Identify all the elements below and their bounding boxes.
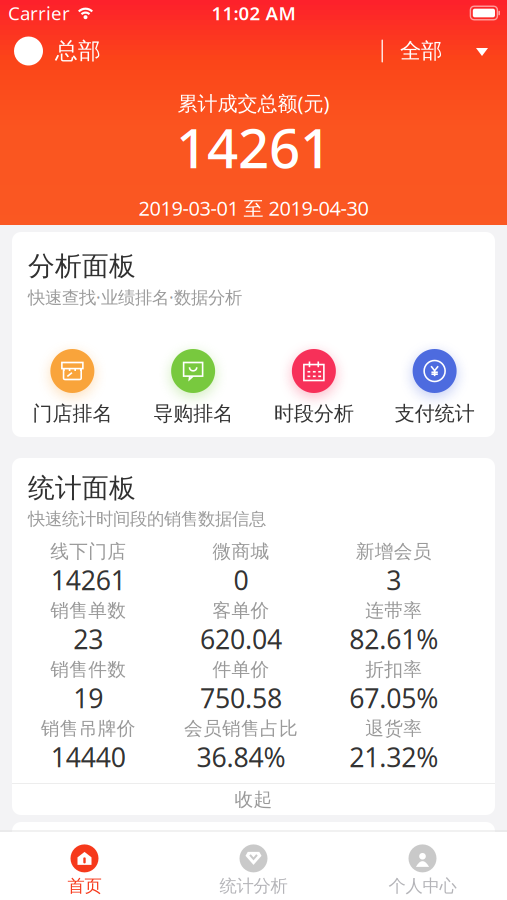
staticText: 门店排名 [32, 401, 112, 426]
staticText: 导购排名 [153, 401, 233, 426]
staticText: 折扣率 [365, 658, 422, 681]
staticText: 快速查找·业绩排名·数据分析 [28, 285, 242, 308]
staticText: 11:02 AM [211, 1, 295, 25]
staticText: 82.61% [349, 621, 438, 657]
staticText: 620.04 [200, 621, 282, 657]
staticText: 快速统计时间段的销售数据信息 [28, 508, 266, 530]
staticText: 750.58 [200, 680, 282, 716]
staticText: 微商城 [212, 540, 269, 563]
staticText: 销售吊牌价 [41, 717, 136, 740]
staticText: 0 [233, 562, 248, 598]
button[interactable]: 收起 [12, 784, 495, 815]
staticText: 累计成交总额(元) [177, 90, 329, 116]
staticText: 销售件数 [50, 658, 126, 681]
staticText: 21.32% [349, 739, 438, 775]
staticText: 统计分析 [219, 875, 287, 897]
button[interactable]: 首页 [0, 844, 169, 893]
button[interactable]: 统计分析 [169, 844, 338, 893]
staticText: 14440 [51, 739, 126, 775]
staticText: 14261 [51, 562, 126, 598]
staticText: 14261 [176, 111, 331, 183]
staticText: 线下门店 [50, 540, 126, 563]
staticText: 连带率 [365, 599, 422, 622]
staticText: 支付统计 [395, 401, 475, 426]
staticText: 3 [386, 562, 401, 598]
staticText: 67.05% [349, 680, 438, 716]
staticText: 首页 [67, 875, 101, 897]
staticText: 时段分析 [274, 401, 354, 426]
button[interactable]: 全部 [383, 40, 507, 62]
staticText: 个人中心 [388, 875, 456, 897]
staticText: 19 [73, 680, 103, 716]
staticText: 2019-03-01 至 2019-04-30 [138, 195, 368, 221]
button[interactable]: 个人中心 [338, 844, 507, 893]
button[interactable]: 导购排名 [133, 349, 254, 422]
button[interactable]: 时段分析 [253, 349, 374, 422]
staticText: 收起 [234, 788, 272, 811]
staticText: 23 [73, 621, 103, 657]
staticText: 统计面板 [28, 472, 136, 504]
staticText: 总部 [55, 37, 101, 65]
button[interactable]: 总部 [0, 36, 101, 65]
staticText: 退货率 [365, 717, 422, 740]
button[interactable]: 支付统计 [374, 349, 495, 422]
staticText: 会员销售占比 [184, 717, 298, 740]
staticText: 分析面板 [28, 250, 136, 282]
staticText: 客单价 [212, 599, 269, 622]
staticText: 件单价 [212, 658, 269, 681]
button[interactable]: 门店排名 [12, 349, 133, 422]
staticText: 新增会员 [356, 540, 432, 563]
staticText: Carrier [8, 1, 70, 25]
staticText: 全部 [400, 38, 442, 64]
staticText: 销售单数 [50, 599, 126, 622]
staticText: 36.84% [196, 739, 285, 775]
